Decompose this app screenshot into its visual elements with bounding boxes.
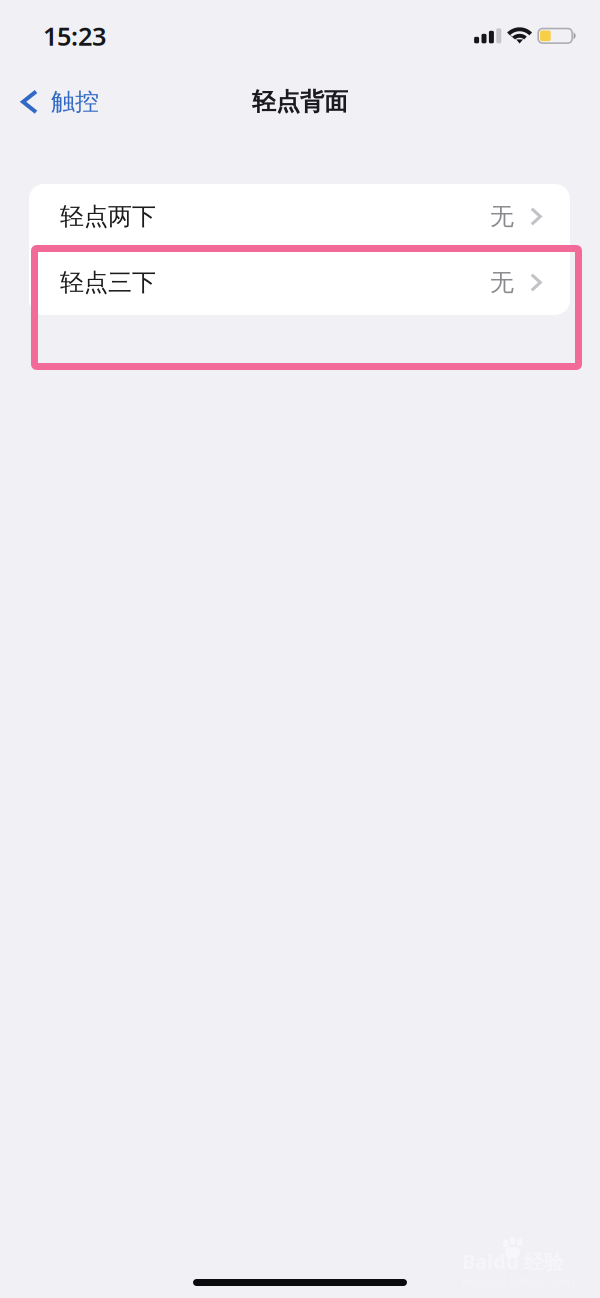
staticText: 轻点三下 bbox=[60, 268, 156, 297]
button[interactable]: 轻点三下 bbox=[29, 250, 570, 315]
staticText: 15:23 bbox=[43, 19, 106, 53]
button[interactable]: 触控 bbox=[0, 79, 113, 124]
staticText: 触控 bbox=[51, 87, 99, 116]
staticText: 轻点背面 bbox=[252, 87, 348, 116]
button[interactable]: 轻点两下 bbox=[29, 184, 570, 249]
staticText: 无 bbox=[490, 202, 514, 231]
staticText: 轻点两下 bbox=[60, 202, 156, 231]
staticText: 无 bbox=[490, 268, 514, 297]
